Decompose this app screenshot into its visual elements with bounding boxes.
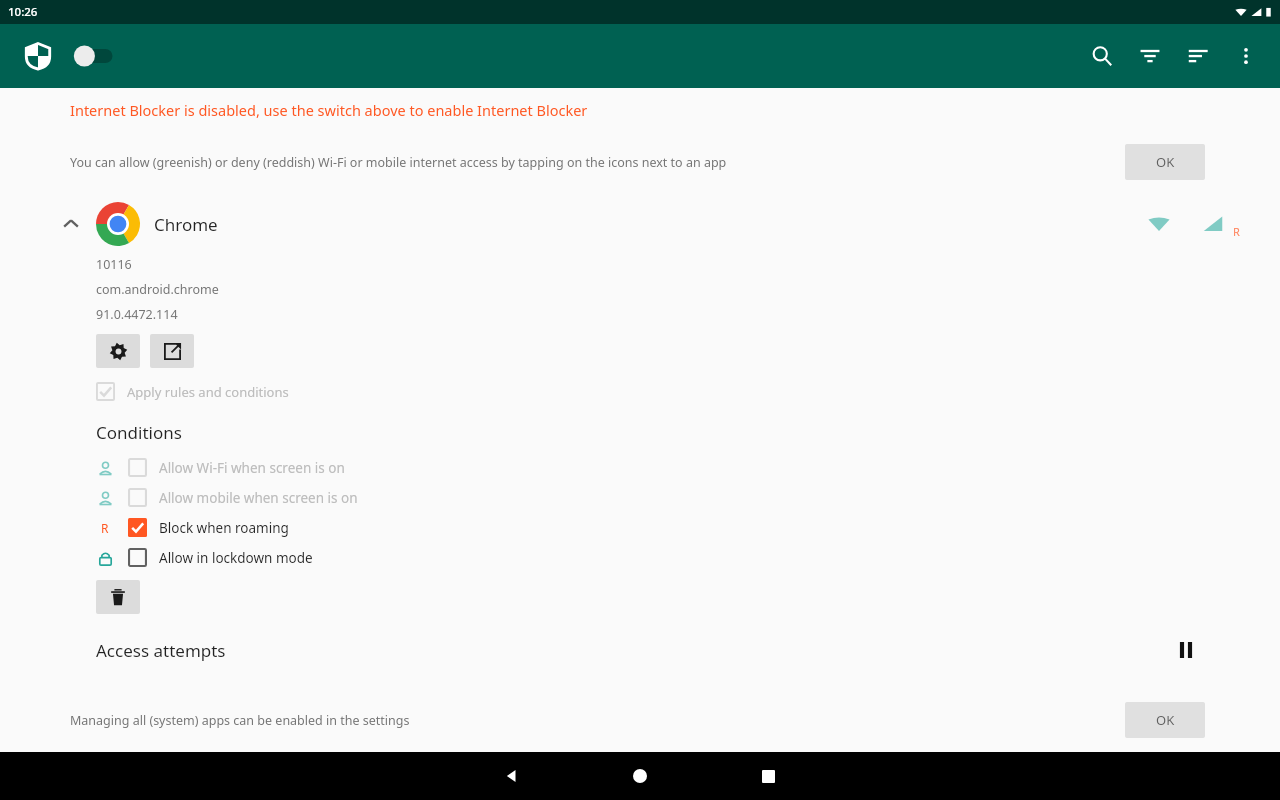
- button[interactable]: R: [96, 518, 1280, 537]
- staticText: Managing all (system) apps can be enable…: [70, 712, 1109, 729]
- staticText: Chrome: [154, 213, 218, 236]
- button[interactable]: More options: [1222, 32, 1270, 80]
- button[interactable]: OK: [1125, 144, 1205, 180]
- button[interactable]: Allow mobile when screen is on: [96, 488, 1280, 507]
- staticText: R: [101, 520, 109, 536]
- button[interactable]: Filter: [1126, 32, 1174, 80]
- staticText: Allow Wi-Fi when screen is on: [159, 459, 345, 477]
- button[interactable]: Wi-Fi access: [1139, 204, 1179, 244]
- button[interactable]: Apply rules and conditions: [96, 382, 289, 401]
- staticText: Block when roaming: [159, 519, 289, 537]
- staticText: OK: [1156, 711, 1175, 729]
- staticText: 10:26: [8, 4, 38, 20]
- staticText: Allow mobile when screen is on: [159, 489, 358, 507]
- button[interactable]: App logo: [18, 36, 58, 76]
- staticText: OK: [1156, 153, 1175, 171]
- button[interactable]: Chrome: [62, 202, 1240, 246]
- button[interactable]: OK: [1125, 702, 1205, 738]
- button[interactable]: Delete rules: [96, 580, 140, 614]
- staticText: com.android.chrome: [96, 281, 219, 298]
- button[interactable]: Search: [1078, 32, 1126, 80]
- staticText: Access attempts: [96, 639, 1168, 662]
- button[interactable]: Pause logging: [1168, 632, 1204, 668]
- button[interactable]: Back: [488, 752, 536, 800]
- staticText: Internet Blocker is disabled, use the sw…: [70, 100, 588, 120]
- staticText: Conditions: [96, 421, 182, 444]
- button[interactable]: Allow Wi-Fi when screen is on: [96, 458, 1280, 477]
- button[interactable]: Enable Internet Blocker: [74, 40, 126, 72]
- button[interactable]: Sort: [1174, 32, 1222, 80]
- staticText: Allow in lockdown mode: [159, 549, 313, 567]
- staticText: You can allow (greenish) or deny (reddis…: [70, 154, 1109, 171]
- button[interactable]: Open app: [150, 334, 194, 368]
- staticText: 10116: [96, 256, 132, 273]
- staticText: R: [1233, 224, 1240, 239]
- button[interactable]: Recent apps: [744, 752, 792, 800]
- button[interactable]: Mobile access: [1193, 204, 1233, 244]
- button[interactable]: App settings: [96, 334, 140, 368]
- staticText: Apply rules and conditions: [127, 383, 289, 401]
- staticText: 91.0.4472.114: [96, 306, 178, 323]
- button[interactable]: Home: [616, 752, 664, 800]
- button[interactable]: Allow in lockdown mode: [96, 548, 1280, 567]
